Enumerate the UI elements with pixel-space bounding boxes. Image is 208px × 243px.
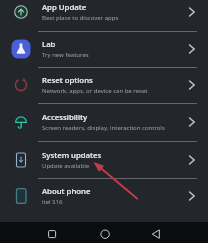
staticText: About phone [42,186,91,197]
button[interactable]: Accessibility [0,104,208,141]
staticText: Screen readers, display, interaction con… [42,124,165,132]
button[interactable] [140,222,171,243]
staticText: Network, apps, or device can be reset [42,87,148,95]
button[interactable]: System updates [0,142,208,178]
button[interactable]: About phone [0,179,208,222]
staticText: Best place to discover apps [42,14,119,22]
button[interactable] [89,222,120,243]
button[interactable] [36,222,67,243]
staticText: System updates [42,150,102,161]
button[interactable]: Reset options [0,68,208,103]
staticText: itel S16 [42,198,63,206]
button[interactable]: App Update [0,0,208,31]
staticText: Accessibility [42,112,88,123]
staticText: App Update [42,2,87,13]
button[interactable]: Lab [0,32,208,67]
staticText: Lab [42,39,56,50]
staticText: Update available [42,162,90,170]
staticText: Try new features [42,51,89,59]
staticText: Reset options [42,75,93,86]
